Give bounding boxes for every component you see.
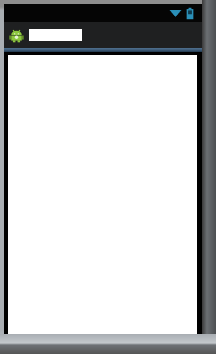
other: App icon [8,27,25,44]
other: Battery [186,7,194,20]
other: Wi-Fi signal [169,7,182,20]
button[interactable]: App icon [4,22,202,48]
